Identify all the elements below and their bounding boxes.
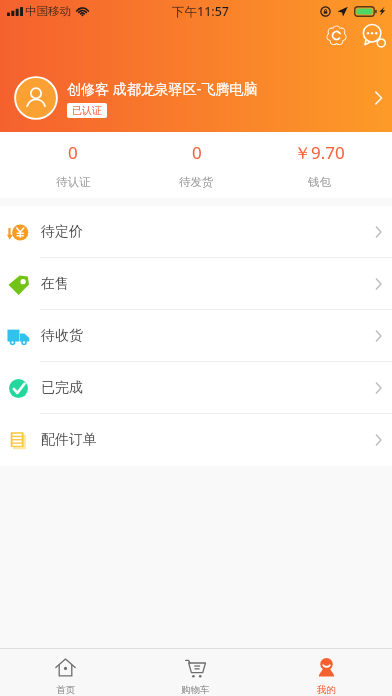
button[interactable]: 首页 [0, 649, 130, 696]
staticText: 0 [68, 141, 78, 164]
staticText: 待定价 [41, 223, 83, 241]
staticText: 已完成 [41, 379, 83, 397]
staticText: 中国移动 [25, 4, 71, 18]
staticText: 0 [192, 141, 202, 164]
button[interactable]: 待定价 [0, 206, 392, 258]
button[interactable]: 我的 [261, 649, 392, 696]
button[interactable]: 创修客 成都龙泉驿区-飞腾电脑 [0, 68, 392, 128]
staticText: 我的 [317, 684, 336, 696]
staticText: 在售 [41, 275, 69, 293]
button[interactable]: Messages [359, 21, 387, 49]
staticText: 创修客 成都龙泉驿区-飞腾电脑 [67, 79, 258, 98]
staticText: ￥9.70 [294, 141, 345, 164]
staticText: 首页 [56, 684, 75, 696]
staticText: 下午11:57 [172, 3, 230, 20]
staticText: 待发货 [179, 175, 214, 189]
button[interactable]: 待收货 [0, 310, 392, 362]
button[interactable]: 在售 [0, 258, 392, 310]
button[interactable]: Settings [322, 21, 350, 49]
button[interactable]: 配件订单 [0, 414, 392, 466]
staticText: 已认证 [72, 104, 102, 117]
staticText: 配件订单 [41, 431, 97, 449]
button[interactable]: 0 [135, 132, 258, 198]
button[interactable]: 购物车 [130, 649, 261, 696]
button[interactable]: ￥9.70 [258, 132, 381, 198]
button[interactable]: 0 [11, 132, 135, 198]
staticText: 待认证 [56, 175, 91, 189]
staticText: 钱包 [308, 175, 331, 189]
staticText: 购物车 [181, 684, 210, 696]
button[interactable]: 已完成 [0, 362, 392, 414]
staticText: 待收货 [41, 327, 83, 345]
